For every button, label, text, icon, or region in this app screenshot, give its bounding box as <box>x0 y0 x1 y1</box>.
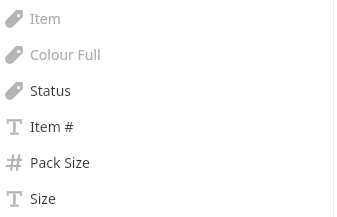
button[interactable]: Status <box>0 72 337 108</box>
button[interactable]: Pack Size <box>0 144 337 180</box>
staticText: Size <box>30 189 56 208</box>
staticText: Pack Size <box>30 153 90 172</box>
button[interactable]: Item # <box>0 108 337 144</box>
button[interactable]: Colour Full <box>0 36 337 72</box>
staticText: Item # <box>30 117 74 136</box>
staticText: Item <box>30 9 61 28</box>
staticText: Colour Full <box>30 45 101 64</box>
button[interactable]: Item <box>0 0 337 36</box>
button[interactable]: Size <box>0 180 337 216</box>
staticText: Status <box>30 81 72 100</box>
